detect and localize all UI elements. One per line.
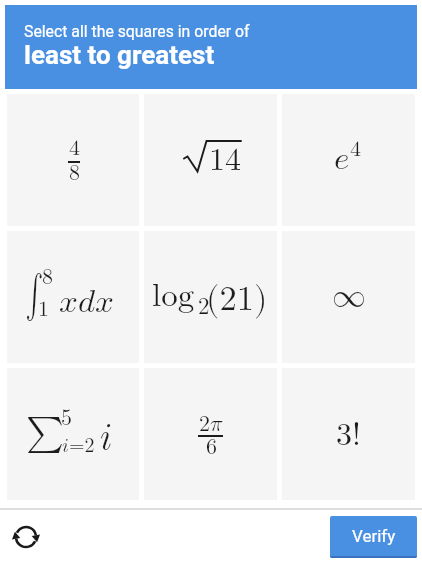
staticText: 6 <box>206 436 218 458</box>
staticText: 5 <box>61 407 73 429</box>
staticText: 14 <box>209 144 242 176</box>
staticText: 3! <box>336 419 361 451</box>
staticText: log <box>152 279 195 312</box>
button[interactable]: 2𝜋 <box>144 368 277 500</box>
button[interactable]: 14 <box>144 94 277 226</box>
staticText: 4 <box>350 138 362 160</box>
staticText: 8 <box>42 266 54 288</box>
staticText: 2𝜋 <box>199 413 223 435</box>
button[interactable]: ∫ <box>7 231 139 363</box>
staticText: 2 <box>198 295 210 318</box>
staticText: 8 <box>69 162 81 184</box>
staticText: ∞ <box>332 280 366 314</box>
staticText: ∫ <box>25 273 43 316</box>
staticText: Verify <box>352 526 396 546</box>
button[interactable]: 4 <box>7 94 139 226</box>
button[interactable]: ∞ <box>282 231 415 363</box>
staticText: least to greatest <box>24 40 215 70</box>
staticText: ∑ <box>26 415 65 451</box>
staticText: 1 <box>38 298 50 320</box>
staticText: 𝑥𝑑𝑥 <box>59 285 114 318</box>
staticText: (21) <box>206 282 268 316</box>
button[interactable]: log <box>144 231 277 363</box>
button[interactable]: Verify <box>330 516 417 558</box>
button[interactable]: 3! <box>282 368 415 500</box>
staticText: 𝑒 <box>334 142 350 175</box>
button[interactable] <box>12 523 40 551</box>
staticText: 4 <box>69 137 81 159</box>
button[interactable]: 𝑒 <box>282 94 415 226</box>
staticText: 𝑖 <box>100 420 113 456</box>
button[interactable]: ∑ <box>7 368 139 500</box>
staticText: Select all the squares in order of <box>24 22 250 41</box>
staticText: 𝑖=2 <box>62 436 95 456</box>
